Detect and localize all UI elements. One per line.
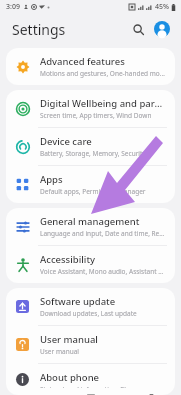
- staticText: Download updates, Last update: [40, 309, 137, 318]
- staticText: Voice Assistant, Mono audio, Assistant m…: [40, 267, 167, 276]
- staticText: Screen time, App timers, Wind Down: [40, 111, 152, 120]
- button[interactable]: General management: [6, 208, 175, 245]
- button[interactable]: Advanced features: [6, 48, 175, 85]
- staticText: Motions and gestures, One-handed mode: [40, 69, 167, 78]
- staticText: Battery, Storage, Memory, Security: [40, 149, 146, 158]
- staticText: Status, Legal information, Phone name: [40, 385, 159, 388]
- button[interactable]: Digital Wellbeing and parental controls: [6, 90, 175, 127]
- staticText: User manual: [40, 333, 98, 346]
- staticText: Default apps, Permission manager: [40, 187, 146, 196]
- button[interactable]: Search: [127, 18, 149, 40]
- staticText: 45%: [155, 2, 169, 12]
- staticText: Language and input, Date and time, Reset: [40, 229, 167, 238]
- button[interactable]: Software update: [6, 288, 175, 325]
- staticText: User manual: [40, 347, 79, 356]
- button[interactable]: Accessibility: [6, 246, 175, 283]
- staticText: Advanced features: [40, 55, 125, 68]
- staticText: Settings: [12, 20, 66, 39]
- button[interactable]: Device care: [6, 128, 175, 165]
- button[interactable]: User manual: [6, 326, 175, 363]
- staticText: Apps: [40, 173, 63, 186]
- button[interactable]: Account: [151, 18, 173, 40]
- staticText: About phone: [40, 371, 100, 384]
- staticText: Accessibility: [40, 253, 96, 266]
- button[interactable]: Apps: [6, 166, 175, 203]
- staticText: General management: [40, 215, 140, 228]
- staticText: Software update: [40, 295, 116, 308]
- button[interactable]: About phone: [6, 364, 175, 395]
- staticText: 3:09: [6, 2, 20, 12]
- staticText: Digital Wellbeing and parental controls: [40, 97, 167, 110]
- staticText: Device care: [40, 135, 92, 148]
